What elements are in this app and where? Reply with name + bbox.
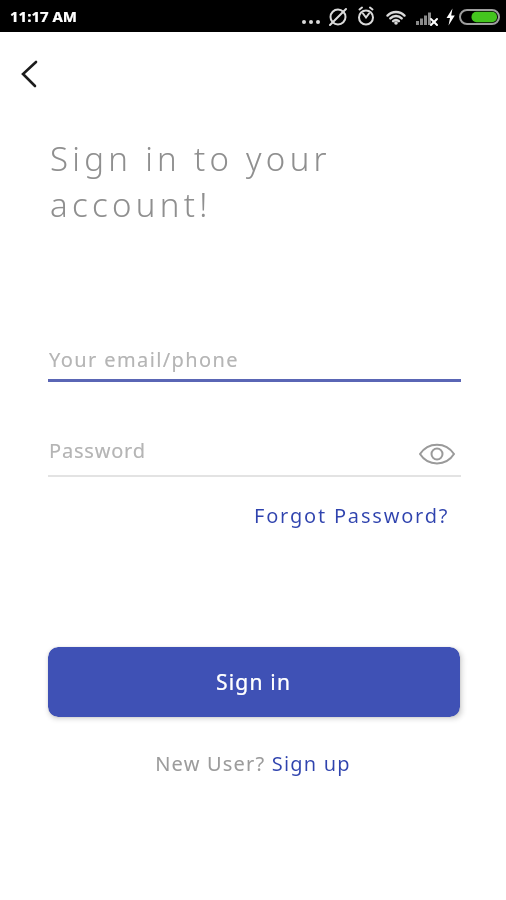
button[interactable]: New User? Sign up (155, 750, 351, 777)
button[interactable]: Your email/phone (48, 336, 461, 382)
staticText: Password (49, 437, 146, 464)
staticText: New User? Sign up (155, 750, 351, 777)
staticText: 11:17 AM (10, 6, 77, 26)
button[interactable]: Forgot Password? (254, 502, 450, 529)
button[interactable] (10, 50, 58, 98)
button[interactable] (412, 436, 456, 472)
staticText: Your email/phone (49, 346, 239, 373)
staticText: Forgot Password? (254, 502, 450, 529)
button[interactable]: Sign in (48, 647, 460, 717)
staticText: Sign in to your account! (50, 136, 331, 227)
button[interactable]: Password (48, 428, 461, 477)
staticText: Sign in (216, 668, 292, 697)
